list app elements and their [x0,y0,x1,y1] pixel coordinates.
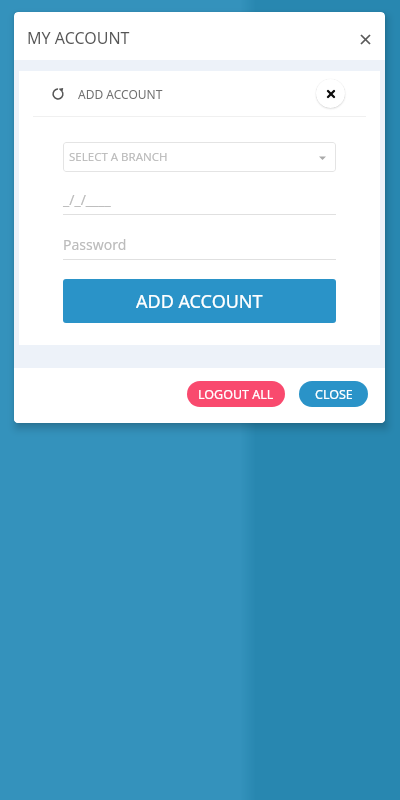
button[interactable]: SELECT A BRANCH [63,142,336,172]
staticText: Password [63,235,127,254]
button[interactable]: LOGOUT ALL [187,381,285,407]
staticText: ADD ACCOUNT [136,289,263,314]
button[interactable]: Close [316,79,345,108]
button[interactable]: _/_/____ [63,190,336,215]
button[interactable]: Password [63,235,336,260]
staticText: LOGOUT ALL [198,386,274,403]
staticText: CLOSE [315,386,353,403]
staticText: MY ACCOUNT [27,27,130,49]
button[interactable]: CLOSE [299,381,368,407]
staticText: SELECT A BRANCH [69,149,168,165]
button[interactable]: ADD ACCOUNT [63,279,336,323]
staticText: _/_/____ [63,190,111,209]
button[interactable]: Close dialog [351,25,379,53]
staticText: ADD ACCOUNT [78,86,163,102]
